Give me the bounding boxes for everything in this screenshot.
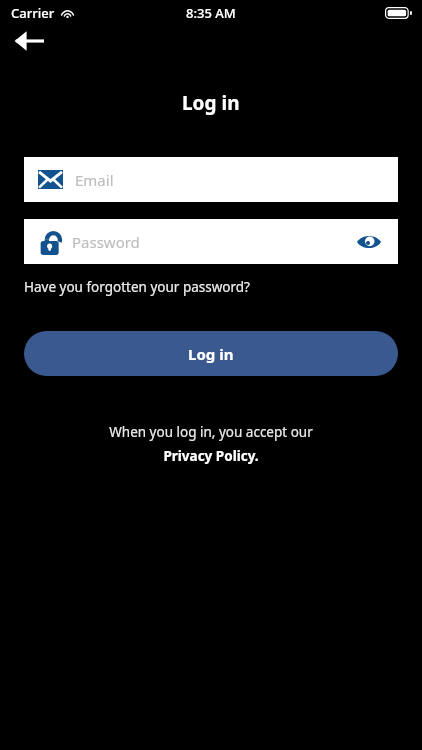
staticText: Log in [182, 90, 240, 116]
button[interactable]: Have you forgotten your password? [24, 278, 250, 296]
staticText: 8:35 AM [186, 4, 236, 22]
staticText: Email [75, 170, 114, 190]
staticText: Have you forgotten your password? [24, 278, 250, 296]
button[interactable]: Log in [24, 331, 398, 376]
staticText: When you log in, you accept our [109, 423, 313, 441]
staticText: Privacy Policy. [163, 447, 259, 465]
button[interactable]: Password [24, 219, 398, 264]
button[interactable]: Privacy Policy. [163, 447, 259, 465]
staticText: Password [72, 232, 352, 252]
staticText: Log in [188, 344, 234, 364]
button[interactable]: Email [24, 157, 398, 202]
staticText: Carrier [11, 4, 55, 22]
button[interactable]: Back [6, 24, 52, 58]
button[interactable]: Show password [352, 225, 386, 259]
